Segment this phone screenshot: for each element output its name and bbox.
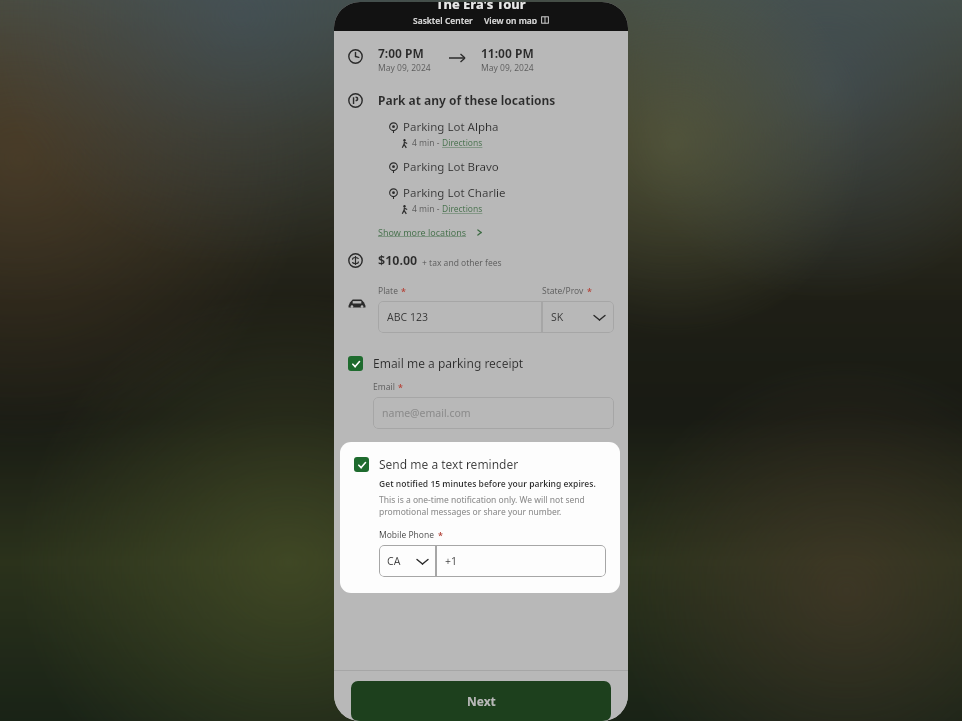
button[interactable]: Send me a text reminder [354,456,519,472]
staticText: Get notified 15 minutes before your park… [379,478,596,490]
staticText: Directions [442,203,483,215]
button[interactable]: Directions [442,203,483,215]
staticText: Park at any of these locations [378,92,556,108]
staticText: Send me a text reminder [379,456,519,472]
button[interactable]: Directions [442,137,483,149]
button[interactable]: Next [351,681,611,721]
staticText: State/Prov [542,285,584,297]
button[interactable]: CA [379,545,436,577]
staticText: Mobile Phone [379,529,435,541]
staticText: The Era's Tour [436,2,526,13]
button[interactable]: SK [542,301,614,333]
staticText: 7:00 PM [378,45,424,61]
staticText: CA [387,554,401,568]
staticText: Parking Lot Alpha [403,119,499,135]
button[interactable]: name@email.com [373,397,614,429]
staticText: SK [551,310,564,324]
staticText: +1 [445,554,458,568]
staticText: $10.00 [378,252,418,269]
staticText: This is a one-time notification only. We… [379,494,585,506]
staticText: Email me a parking receipt [373,355,524,371]
staticText: + tax and other fees [422,257,502,269]
staticText: Plate [378,285,398,297]
staticText: View on map [484,15,538,24]
staticText: * [398,381,403,393]
button[interactable]: +1 [436,545,606,577]
staticText: ABC 123 [387,310,428,324]
staticText: 4 min - [412,137,442,149]
staticText: * [587,285,592,297]
staticText: 11:00 PM [481,45,534,61]
staticText: Directions [442,137,483,149]
staticText: name@email.com [382,406,471,420]
button[interactable]: Show more locations [378,226,484,238]
staticText: Parking Lot Bravo [403,159,499,175]
staticText: Show more locations [378,226,467,238]
button[interactable]: View on map [484,15,549,24]
button[interactable]: Email me a parking receipt [348,355,524,371]
staticText: Next [467,693,496,709]
staticText: May 09, 2024 [378,62,431,74]
staticText: Email [373,381,395,393]
staticText: May 09, 2024 [481,62,534,74]
other: View on map [541,16,549,24]
staticText: * [438,529,443,541]
staticText: * [401,285,406,297]
staticText: promotional messages or share your numbe… [379,506,562,518]
staticText: 4 min - [412,203,442,215]
staticText: Sasktel Center [413,15,473,24]
staticText: Parking Lot Charlie [403,185,506,201]
button[interactable]: ABC 123 [378,301,542,333]
